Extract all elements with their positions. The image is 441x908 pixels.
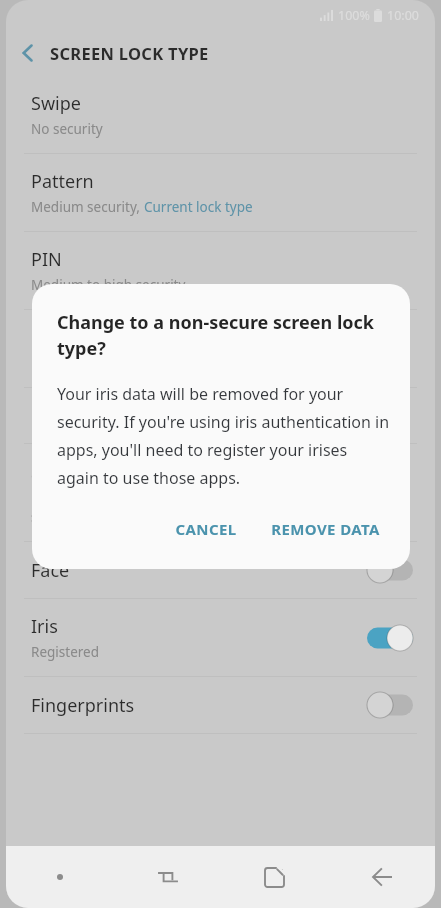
button[interactable]: Menu indicator bbox=[6, 846, 114, 908]
staticText: CANCEL bbox=[175, 519, 237, 539]
staticText: Medium to high security bbox=[31, 276, 186, 294]
staticText: High security bbox=[31, 354, 115, 372]
button[interactable]: Off bbox=[367, 557, 413, 583]
button[interactable]: Iris bbox=[6, 599, 435, 676]
staticText: Password bbox=[31, 325, 113, 350]
staticText: Pattern bbox=[31, 169, 94, 194]
staticText: Medium security, bbox=[31, 198, 144, 216]
button[interactable]: Pattern bbox=[6, 154, 435, 231]
staticText: Your iris data will be removed for your … bbox=[57, 383, 390, 489]
button[interactable]: Face bbox=[6, 542, 435, 598]
button[interactable]: REMOVE DATA bbox=[261, 509, 390, 549]
staticText: SCREEN LOCK TYPE bbox=[50, 42, 209, 64]
staticText: Unlock your device automatically in cert… bbox=[31, 488, 303, 526]
button[interactable]: CANCEL bbox=[165, 509, 247, 549]
staticText: 10:00 bbox=[387, 7, 419, 24]
button[interactable]: None bbox=[6, 388, 435, 443]
button[interactable]: Smart Lock bbox=[6, 444, 435, 541]
staticText: Face bbox=[31, 558, 70, 583]
button[interactable]: Back bbox=[6, 31, 50, 75]
staticText: Current lock type bbox=[144, 198, 253, 216]
staticText: REMOVE DATA bbox=[271, 519, 380, 539]
button[interactable]: Swipe bbox=[6, 76, 435, 153]
staticText: Smart Lock bbox=[31, 459, 125, 484]
button[interactable]: Recents bbox=[114, 846, 221, 908]
staticText: Iris bbox=[31, 614, 58, 639]
button[interactable]: PIN bbox=[6, 232, 435, 309]
staticText: Registered bbox=[31, 643, 99, 661]
staticText: Swipe bbox=[31, 91, 81, 116]
button[interactable]: On bbox=[367, 625, 413, 651]
button[interactable]: Back bbox=[328, 846, 435, 908]
button[interactable]: Password bbox=[6, 310, 435, 387]
button[interactable]: Fingerprints bbox=[6, 677, 435, 733]
staticText: 100% bbox=[338, 7, 370, 24]
staticText: Change to a non-secure screen lock type? bbox=[57, 310, 390, 361]
staticText: No security bbox=[31, 120, 103, 138]
button[interactable]: Off bbox=[367, 692, 413, 718]
staticText: None bbox=[31, 403, 77, 428]
button[interactable]: Home bbox=[221, 846, 328, 908]
staticText: PIN bbox=[31, 247, 62, 272]
staticText: Fingerprints bbox=[31, 693, 135, 718]
